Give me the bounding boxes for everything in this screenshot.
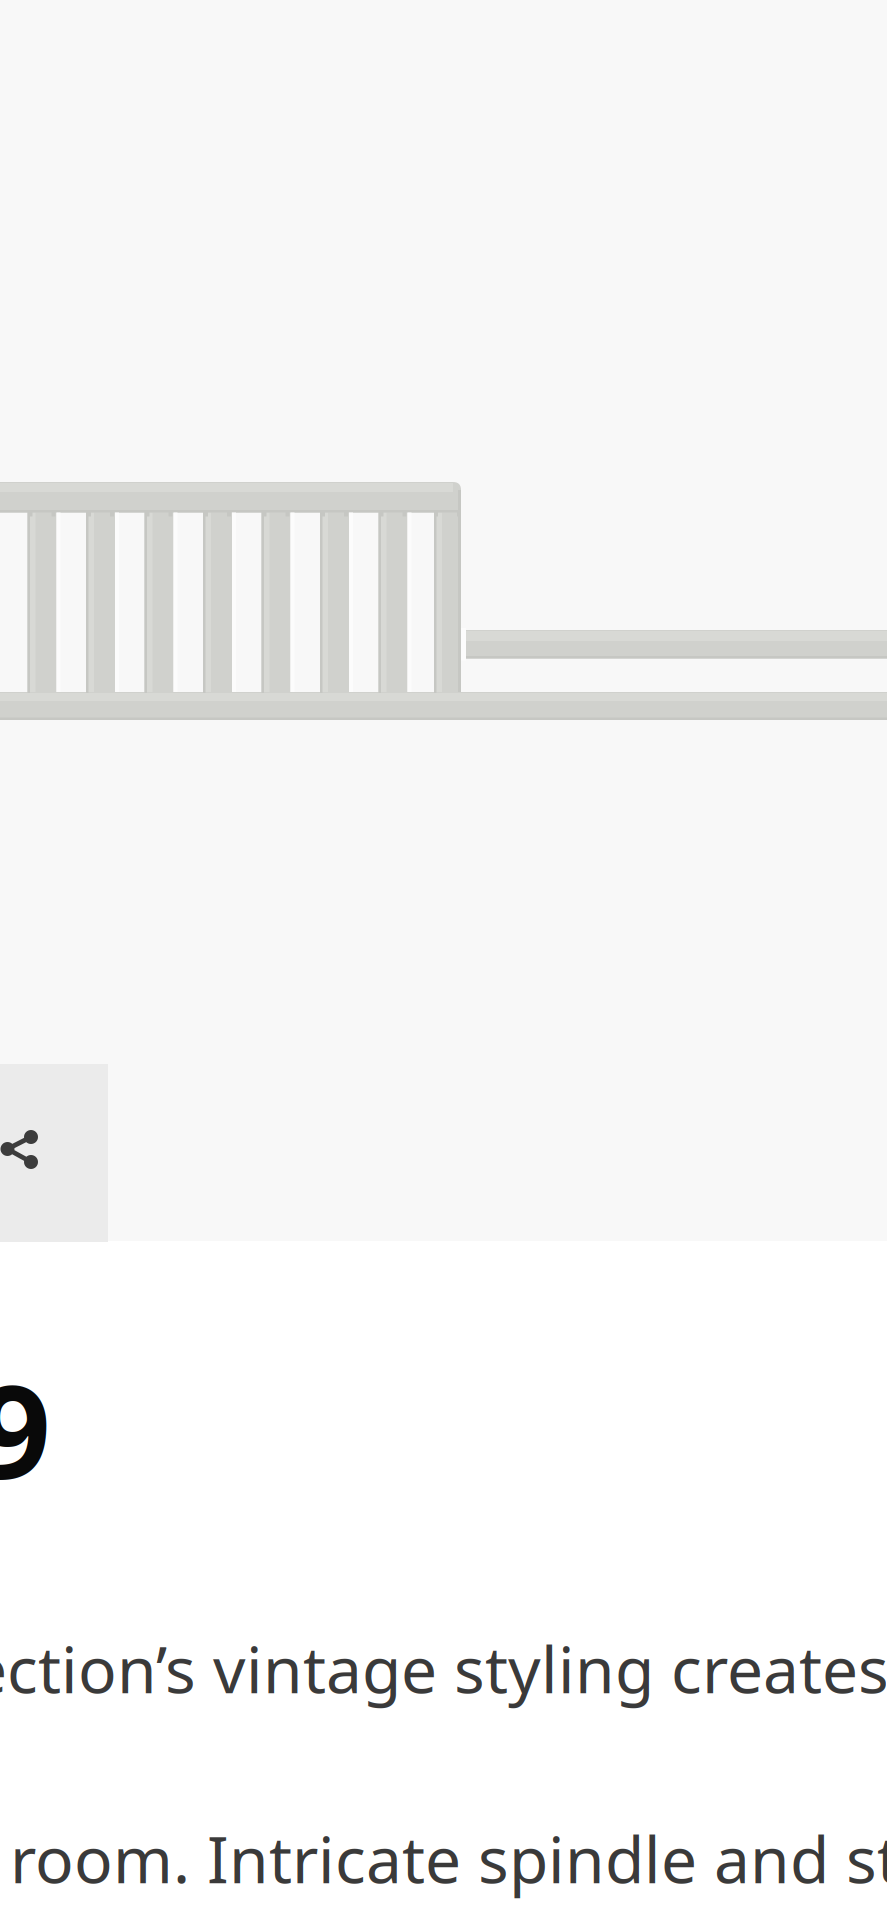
- staticText: ection’s vintage styling creates: [0, 1626, 887, 1711]
- button[interactable]: Share: [0, 0, 887, 1920]
- staticText: room. Intricate spindle and stu: [10, 1816, 887, 1901]
- staticText: 9: [0, 1343, 51, 1515]
